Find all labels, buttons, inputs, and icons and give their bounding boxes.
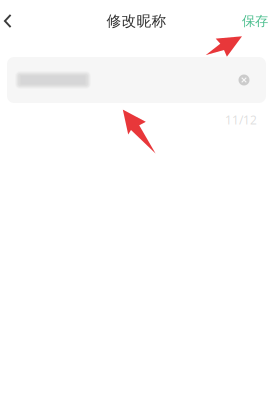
button[interactable]: 保存 (242, 0, 273, 42)
staticText: 保存 (242, 13, 268, 29)
staticText: 修改昵称 (106, 12, 166, 30)
staticText: 11/12 (225, 112, 257, 128)
button[interactable]: Clear text (232, 57, 256, 103)
button[interactable]: Back (0, 0, 30, 42)
button[interactable]: Nickname (7, 57, 232, 103)
